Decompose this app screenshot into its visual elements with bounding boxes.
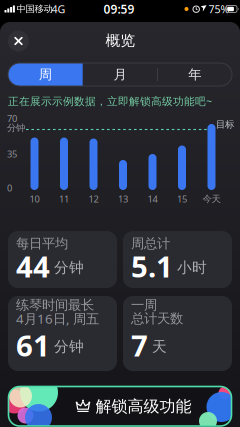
staticText: 总计天数 (131, 310, 183, 327)
staticText: 4G (51, 2, 65, 16)
staticText: 月 (114, 66, 127, 83)
staticText: 44 (16, 246, 50, 285)
staticText: 目标 (216, 119, 234, 130)
staticText: 分钟 (54, 337, 84, 355)
staticText: 小时 (177, 258, 207, 276)
staticText: 周 (39, 66, 52, 83)
staticText: 14 (147, 193, 157, 205)
staticText: 练琴时间最长 (16, 297, 94, 313)
staticText: 周总计 (131, 235, 170, 252)
staticText: 正在展示示例数据，立即解锁高级功能吧~ (8, 94, 212, 108)
staticText: 15 (177, 193, 187, 205)
staticText: 70 (7, 112, 17, 125)
staticText: 天 (152, 337, 167, 355)
button[interactable] (8, 30, 29, 51)
staticText: 09:59 (103, 1, 134, 17)
staticText: 12 (88, 193, 98, 205)
staticText: 每日平均 (16, 235, 68, 252)
staticText: 61 (16, 325, 50, 364)
button[interactable]: 解锁高级功能 (8, 386, 231, 426)
button[interactable]: 月 (83, 63, 157, 86)
staticText: 13 (118, 193, 128, 205)
staticText: 4月16日, 周五 (16, 310, 99, 327)
staticText: 概览 (105, 31, 135, 49)
staticText: 7 (131, 325, 148, 364)
button[interactable]: 周 (8, 63, 83, 86)
staticText: 11 (59, 193, 69, 205)
staticText: 解锁高级功能 (95, 397, 191, 416)
button[interactable]: 正在展示示例数据，立即解锁高级功能吧~ (8, 94, 212, 108)
staticText: 年 (188, 66, 201, 83)
staticText: 35 (7, 148, 17, 160)
staticText: 一周 (131, 297, 157, 313)
staticText: 10 (29, 193, 39, 205)
staticText: 75% (208, 2, 229, 16)
staticText: 分钟 (54, 258, 84, 276)
button[interactable]: 年 (157, 63, 232, 86)
staticText: 中国移动 (16, 3, 52, 15)
staticText: 今天 (202, 193, 220, 205)
staticText: 5.1 (131, 246, 173, 285)
staticText: 0 (7, 182, 12, 194)
staticText: 分钟 (7, 122, 25, 134)
